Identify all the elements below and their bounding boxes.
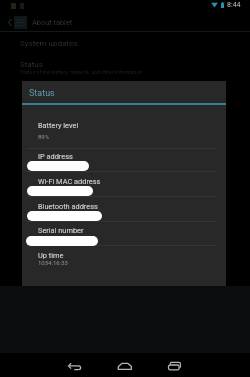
staticText: Status of the battery, network, and othe… <box>20 69 143 75</box>
staticText: System updates <box>20 39 78 48</box>
staticText: Serial number <box>38 226 84 235</box>
staticText: Status <box>20 60 43 69</box>
staticText: About tablet <box>32 18 73 27</box>
staticText: Battery level <box>38 121 79 130</box>
button[interactable]: Recent apps <box>164 358 183 373</box>
staticText: Wi-Fi MAC address <box>38 177 101 186</box>
staticText: Up time <box>38 251 64 260</box>
staticText: IP address <box>38 152 73 161</box>
staticText: Status <box>29 88 55 99</box>
staticText: 1034:16:33 <box>38 259 68 266</box>
button[interactable]: Back <box>66 357 84 373</box>
staticText: 89% <box>38 133 50 140</box>
button[interactable]: Home <box>116 358 134 373</box>
staticText: 8:44 <box>227 1 241 9</box>
staticText: Bluetooth address <box>38 202 98 211</box>
